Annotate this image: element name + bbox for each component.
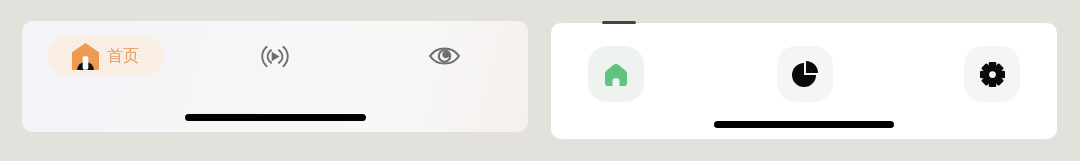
button[interactable]: 首页 xyxy=(47,36,164,76)
button[interactable]: Preview xyxy=(422,34,466,78)
button[interactable]: Statistics xyxy=(777,46,833,102)
button[interactable]: Live xyxy=(253,34,297,78)
button[interactable]: Home xyxy=(588,46,644,102)
staticText: 首页 xyxy=(107,46,139,66)
button[interactable]: Settings xyxy=(964,46,1020,102)
